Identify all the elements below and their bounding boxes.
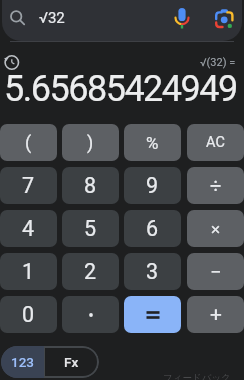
button[interactable]: × bbox=[187, 210, 244, 247]
button[interactable]: 123 bbox=[1, 346, 44, 378]
button[interactable] bbox=[4, 55, 19, 70]
button[interactable] bbox=[124, 296, 181, 333]
button[interactable]: 8 bbox=[62, 167, 119, 204]
staticText: ÷ bbox=[210, 174, 222, 197]
button[interactable]: ( bbox=[0, 124, 57, 161]
staticText: 5 bbox=[84, 216, 97, 241]
staticText: 123 bbox=[11, 354, 35, 370]
staticText: Fx bbox=[64, 354, 79, 370]
button[interactable]: 5 bbox=[62, 210, 119, 247]
staticText: 9 bbox=[146, 173, 159, 198]
button[interactable]: 7 bbox=[0, 167, 57, 204]
staticText: 4 bbox=[22, 216, 35, 241]
button[interactable]: 4 bbox=[0, 210, 57, 247]
staticText: 1 bbox=[22, 259, 35, 284]
staticText: 7 bbox=[22, 173, 35, 198]
button[interactable]: AC bbox=[187, 124, 244, 161]
staticText: − bbox=[210, 260, 222, 283]
button[interactable]: 2 bbox=[62, 253, 119, 290]
staticText: √(32) = bbox=[200, 56, 236, 69]
staticText: % bbox=[146, 133, 159, 153]
button[interactable]: ÷ bbox=[187, 167, 244, 204]
staticText: 6 bbox=[146, 216, 159, 241]
staticText: × bbox=[211, 219, 221, 239]
button[interactable] bbox=[173, 7, 191, 31]
button[interactable]: 0 bbox=[0, 296, 57, 333]
button[interactable]: + bbox=[187, 296, 244, 333]
button[interactable] bbox=[215, 9, 234, 30]
staticText: 8 bbox=[84, 173, 97, 198]
button[interactable]: % bbox=[124, 124, 181, 161]
button[interactable]: ) bbox=[62, 124, 119, 161]
button[interactable]: 1 bbox=[0, 253, 57, 290]
staticText: 5.65685424949 bbox=[4, 68, 237, 109]
button[interactable]: 9 bbox=[124, 167, 181, 204]
staticText: 0 bbox=[22, 302, 35, 327]
staticText: + bbox=[210, 302, 222, 327]
button[interactable] bbox=[2, 0, 242, 41]
staticText: フィードバック bbox=[163, 372, 231, 380]
staticText: 3 bbox=[146, 259, 159, 284]
button[interactable]: Fx bbox=[44, 346, 99, 378]
button[interactable]: 6 bbox=[124, 210, 181, 247]
staticText: ) bbox=[87, 132, 94, 153]
staticText: √32 bbox=[39, 9, 65, 27]
staticText: ( bbox=[25, 132, 32, 153]
button[interactable]: − bbox=[187, 253, 244, 290]
button[interactable] bbox=[62, 296, 119, 333]
button[interactable]: 3 bbox=[124, 253, 181, 290]
staticText: 2 bbox=[84, 259, 97, 284]
staticText: AC bbox=[206, 134, 225, 151]
